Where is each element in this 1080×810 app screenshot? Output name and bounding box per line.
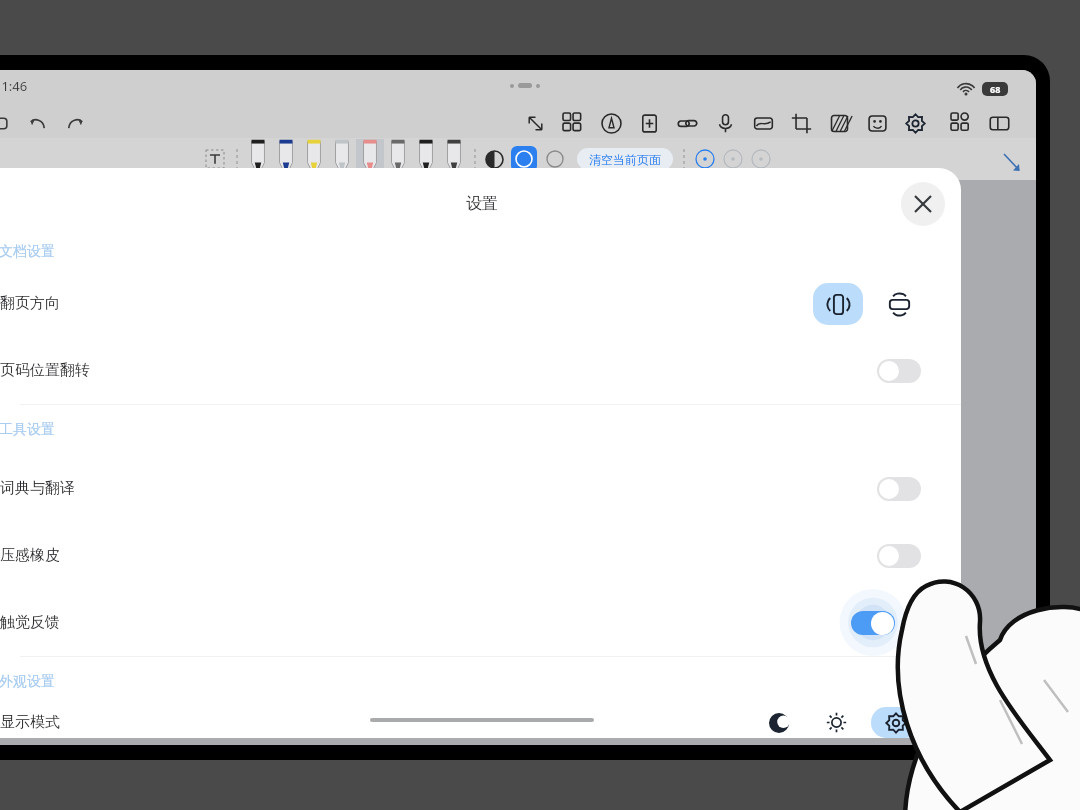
button[interactable]: Undo [18, 104, 56, 142]
button[interactable]: Outline [543, 147, 567, 171]
staticText: 设置 [466, 194, 498, 214]
button[interactable]: Vertical page turn [877, 283, 921, 325]
button[interactable]: Horizontal page turn [813, 283, 863, 325]
button[interactable]: Pen 4 [356, 139, 384, 179]
button[interactable]: Pen 6 [412, 139, 440, 179]
staticText: 68 [990, 83, 1001, 95]
button[interactable]: Redo [56, 104, 94, 142]
button[interactable]: Pen 5 [384, 139, 412, 179]
button[interactable]: Pen 0 [244, 139, 272, 179]
staticText: 压感橡皮 [0, 546, 60, 565]
button[interactable]: Add [630, 104, 668, 142]
button[interactable]: Pen 1 [272, 139, 300, 179]
button[interactable]: 翻页方向 [0, 270, 961, 337]
staticText: 工具设置 [0, 421, 55, 439]
staticText: 触觉反馈 [0, 613, 60, 632]
staticText: 11:46 [0, 77, 28, 95]
button[interactable]: Dark mode [757, 707, 801, 738]
staticText: 词典与翻译 [0, 479, 75, 498]
button[interactable]: Pen 3 [328, 139, 356, 179]
staticText: 页码位置翻转 [0, 361, 90, 380]
button[interactable]: Color white [511, 146, 537, 172]
button[interactable]: Collapse [516, 104, 554, 142]
button[interactable]: Grid [554, 104, 592, 142]
button[interactable]: Link [668, 104, 706, 142]
button[interactable]: Auto mode [871, 707, 921, 738]
staticText: 显示模式 [0, 713, 60, 732]
button[interactable]: 清空当前页面 [577, 148, 673, 170]
button[interactable]: Shade [820, 104, 858, 142]
button[interactable]: Pen 2 [300, 139, 328, 179]
button[interactable]: Toggle [877, 359, 921, 383]
button[interactable]: Stroke size [749, 147, 773, 171]
button[interactable]: Stroke size [721, 147, 745, 171]
button[interactable]: Text tool [204, 148, 226, 170]
button[interactable]: Split view [980, 104, 1018, 142]
button[interactable]: Pen mode [592, 104, 630, 142]
staticText: 文档设置 [0, 243, 55, 261]
button[interactable]: 页码位置翻转 [0, 337, 961, 404]
button[interactable]: Haptic feedback toggle [851, 611, 895, 635]
button[interactable]: Image [744, 104, 782, 142]
button[interactable]: Pages [942, 104, 980, 142]
button[interactable]: Half tone [481, 146, 507, 172]
button[interactable]: Light mode [814, 707, 858, 738]
button[interactable]: 压感橡皮 [0, 522, 961, 589]
staticText: 翻页方向 [0, 294, 60, 313]
button[interactable]: Record [706, 104, 744, 142]
button[interactable]: Stroke size [693, 147, 717, 171]
button[interactable]: 触觉反馈 [0, 589, 961, 656]
staticText: 外观设置 [0, 673, 55, 691]
button[interactable]: Menu [0, 104, 18, 142]
button[interactable]: Toggle [877, 477, 921, 501]
button[interactable]: Sticker [858, 104, 896, 142]
button[interactable]: Pen 7 [440, 139, 468, 179]
button[interactable]: 词典与翻译 [0, 455, 961, 522]
staticText: 清空当前页面 [589, 152, 661, 167]
button[interactable]: Toggle [877, 544, 921, 568]
button[interactable]: Close [901, 182, 945, 226]
button[interactable]: Settings [896, 104, 934, 142]
button[interactable]: Crop [782, 104, 820, 142]
button[interactable]: 显示模式 [0, 707, 961, 738]
